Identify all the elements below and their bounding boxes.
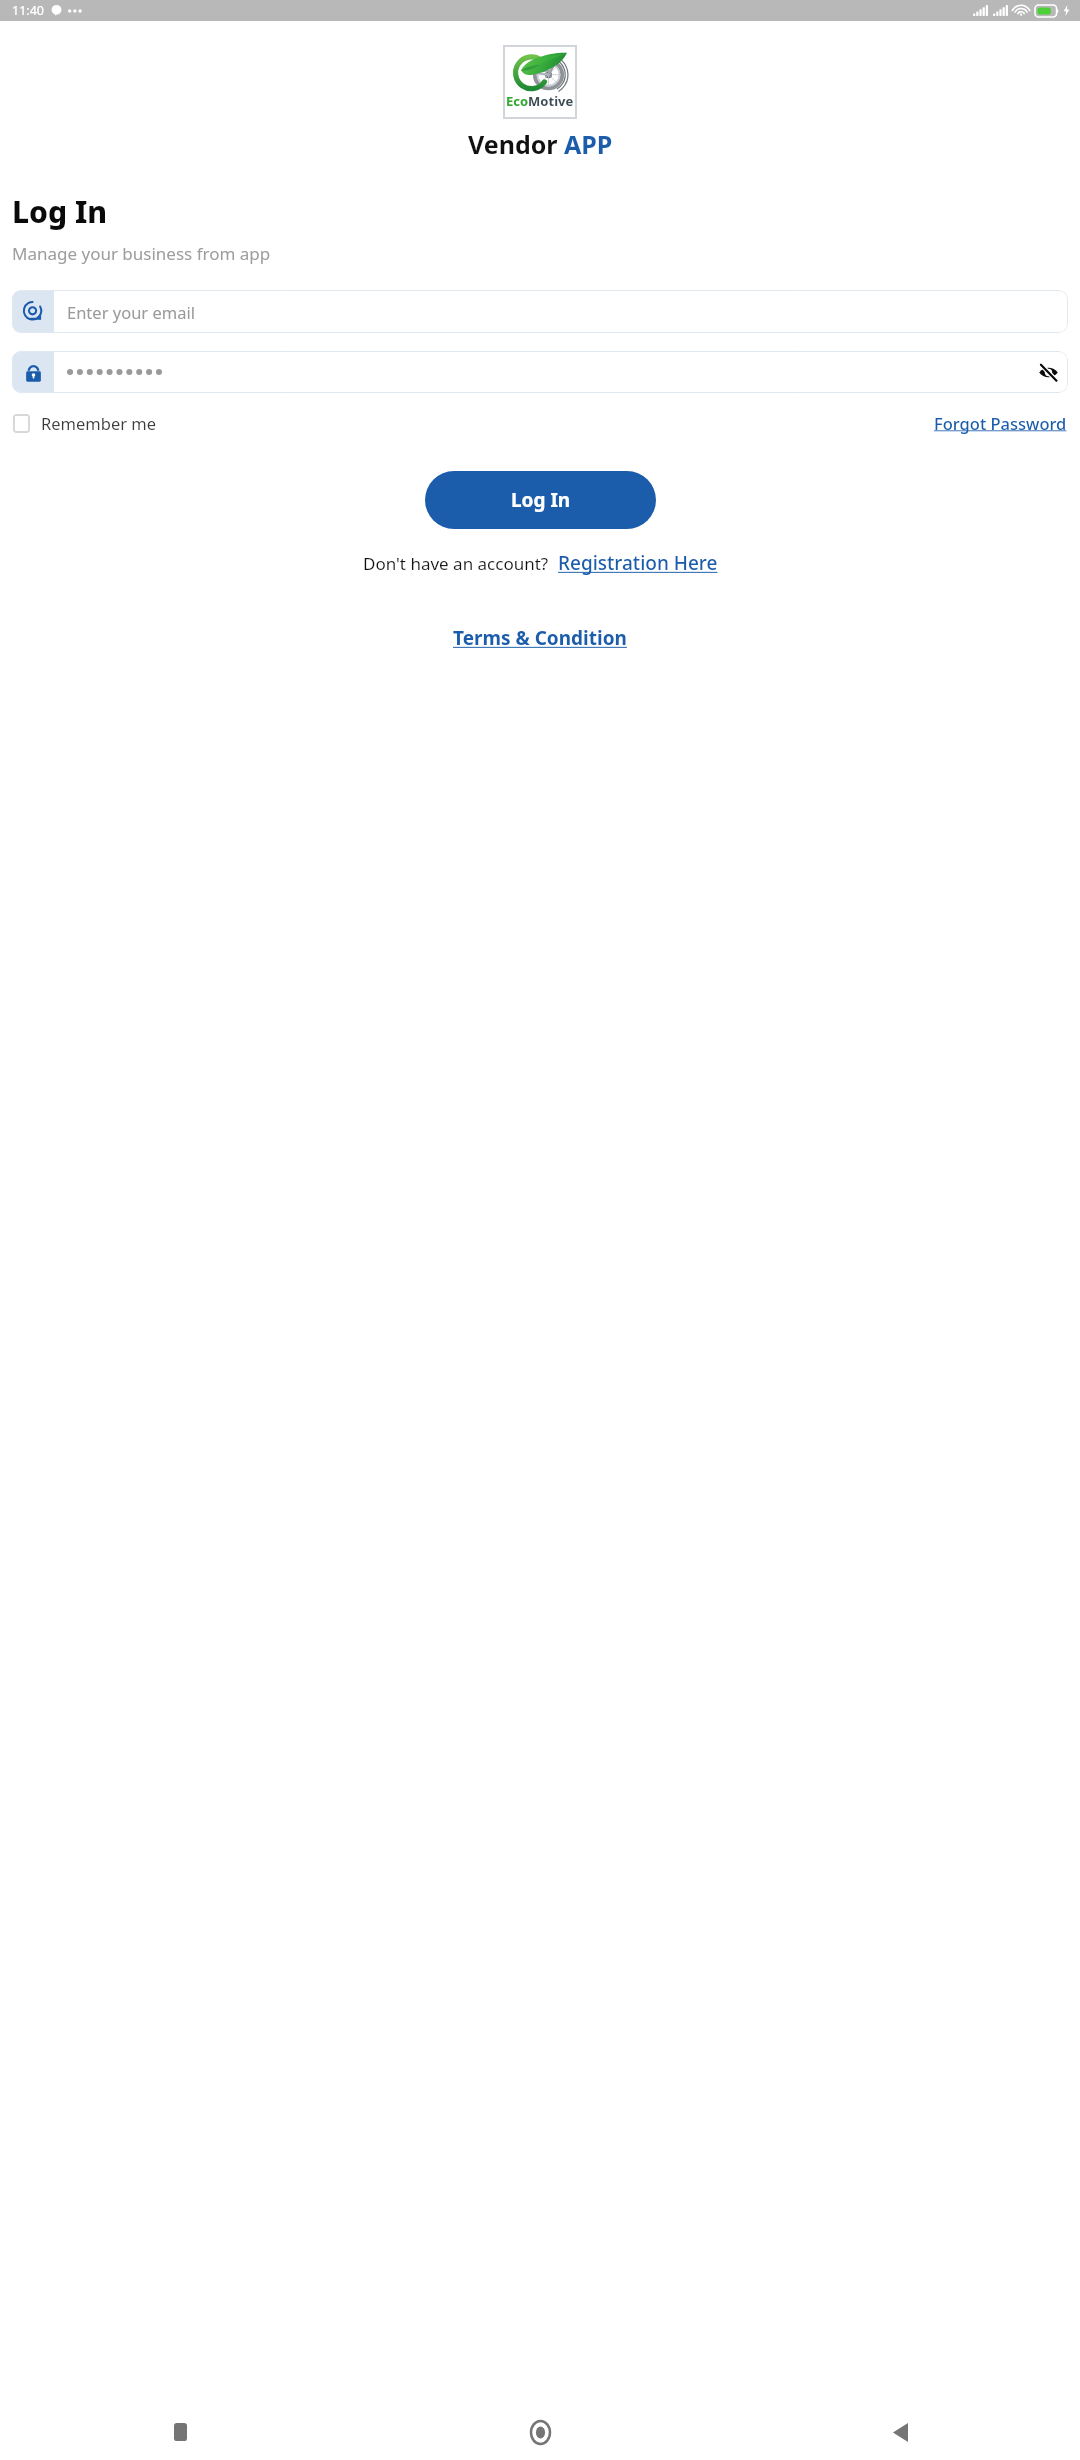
- staticText: Log In: [12, 191, 108, 232]
- staticText: Vendor APP: [468, 127, 613, 161]
- button[interactable]: Back: [720, 2404, 1080, 2460]
- staticText: Terms & Condition: [453, 625, 627, 651]
- button[interactable]: Remember me: [13, 412, 157, 434]
- button[interactable]: Registration Here: [558, 550, 718, 576]
- button[interactable]: Password: [12, 351, 1068, 393]
- button[interactable]: Terms & Condition: [453, 625, 627, 651]
- button[interactable]: Log In: [425, 471, 656, 529]
- staticText: Remember me: [41, 412, 157, 434]
- staticText: Log In: [511, 487, 571, 513]
- staticText: Manage your business from app: [12, 242, 271, 265]
- button[interactable]: Hide password: [1028, 352, 1068, 392]
- staticText: EcoMotive: [506, 92, 574, 110]
- button[interactable]: Email: [12, 290, 1068, 333]
- button[interactable]: Home: [360, 2404, 720, 2460]
- staticText: Registration Here: [558, 550, 718, 576]
- button[interactable]: Recents: [0, 2404, 360, 2460]
- other: Password: [23, 362, 44, 383]
- staticText: Forgot Password: [934, 412, 1067, 434]
- button[interactable]: Forgot Password: [934, 412, 1067, 434]
- staticText: 11:40: [12, 2, 44, 19]
- staticText: Don't have an account?: [363, 552, 549, 575]
- staticText: Enter your email: [67, 301, 195, 323]
- other: Email: [22, 300, 45, 323]
